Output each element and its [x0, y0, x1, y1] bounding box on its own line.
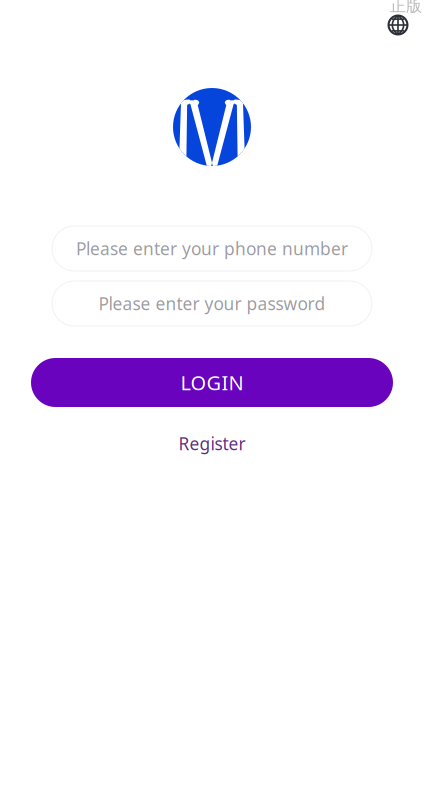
button[interactable]: Please enter your password [52, 281, 372, 326]
button[interactable]: Language [385, 12, 411, 38]
staticText: Please enter your phone number [76, 237, 348, 260]
button[interactable]: Please enter your phone number [52, 226, 372, 271]
staticText: LOGIN [180, 369, 243, 396]
button[interactable]: LOGIN [31, 358, 393, 407]
staticText: 正版 [390, 0, 422, 16]
staticText: Register [178, 432, 245, 455]
button[interactable]: Register [160, 426, 263, 461]
staticText: Please enter your password [98, 292, 325, 315]
